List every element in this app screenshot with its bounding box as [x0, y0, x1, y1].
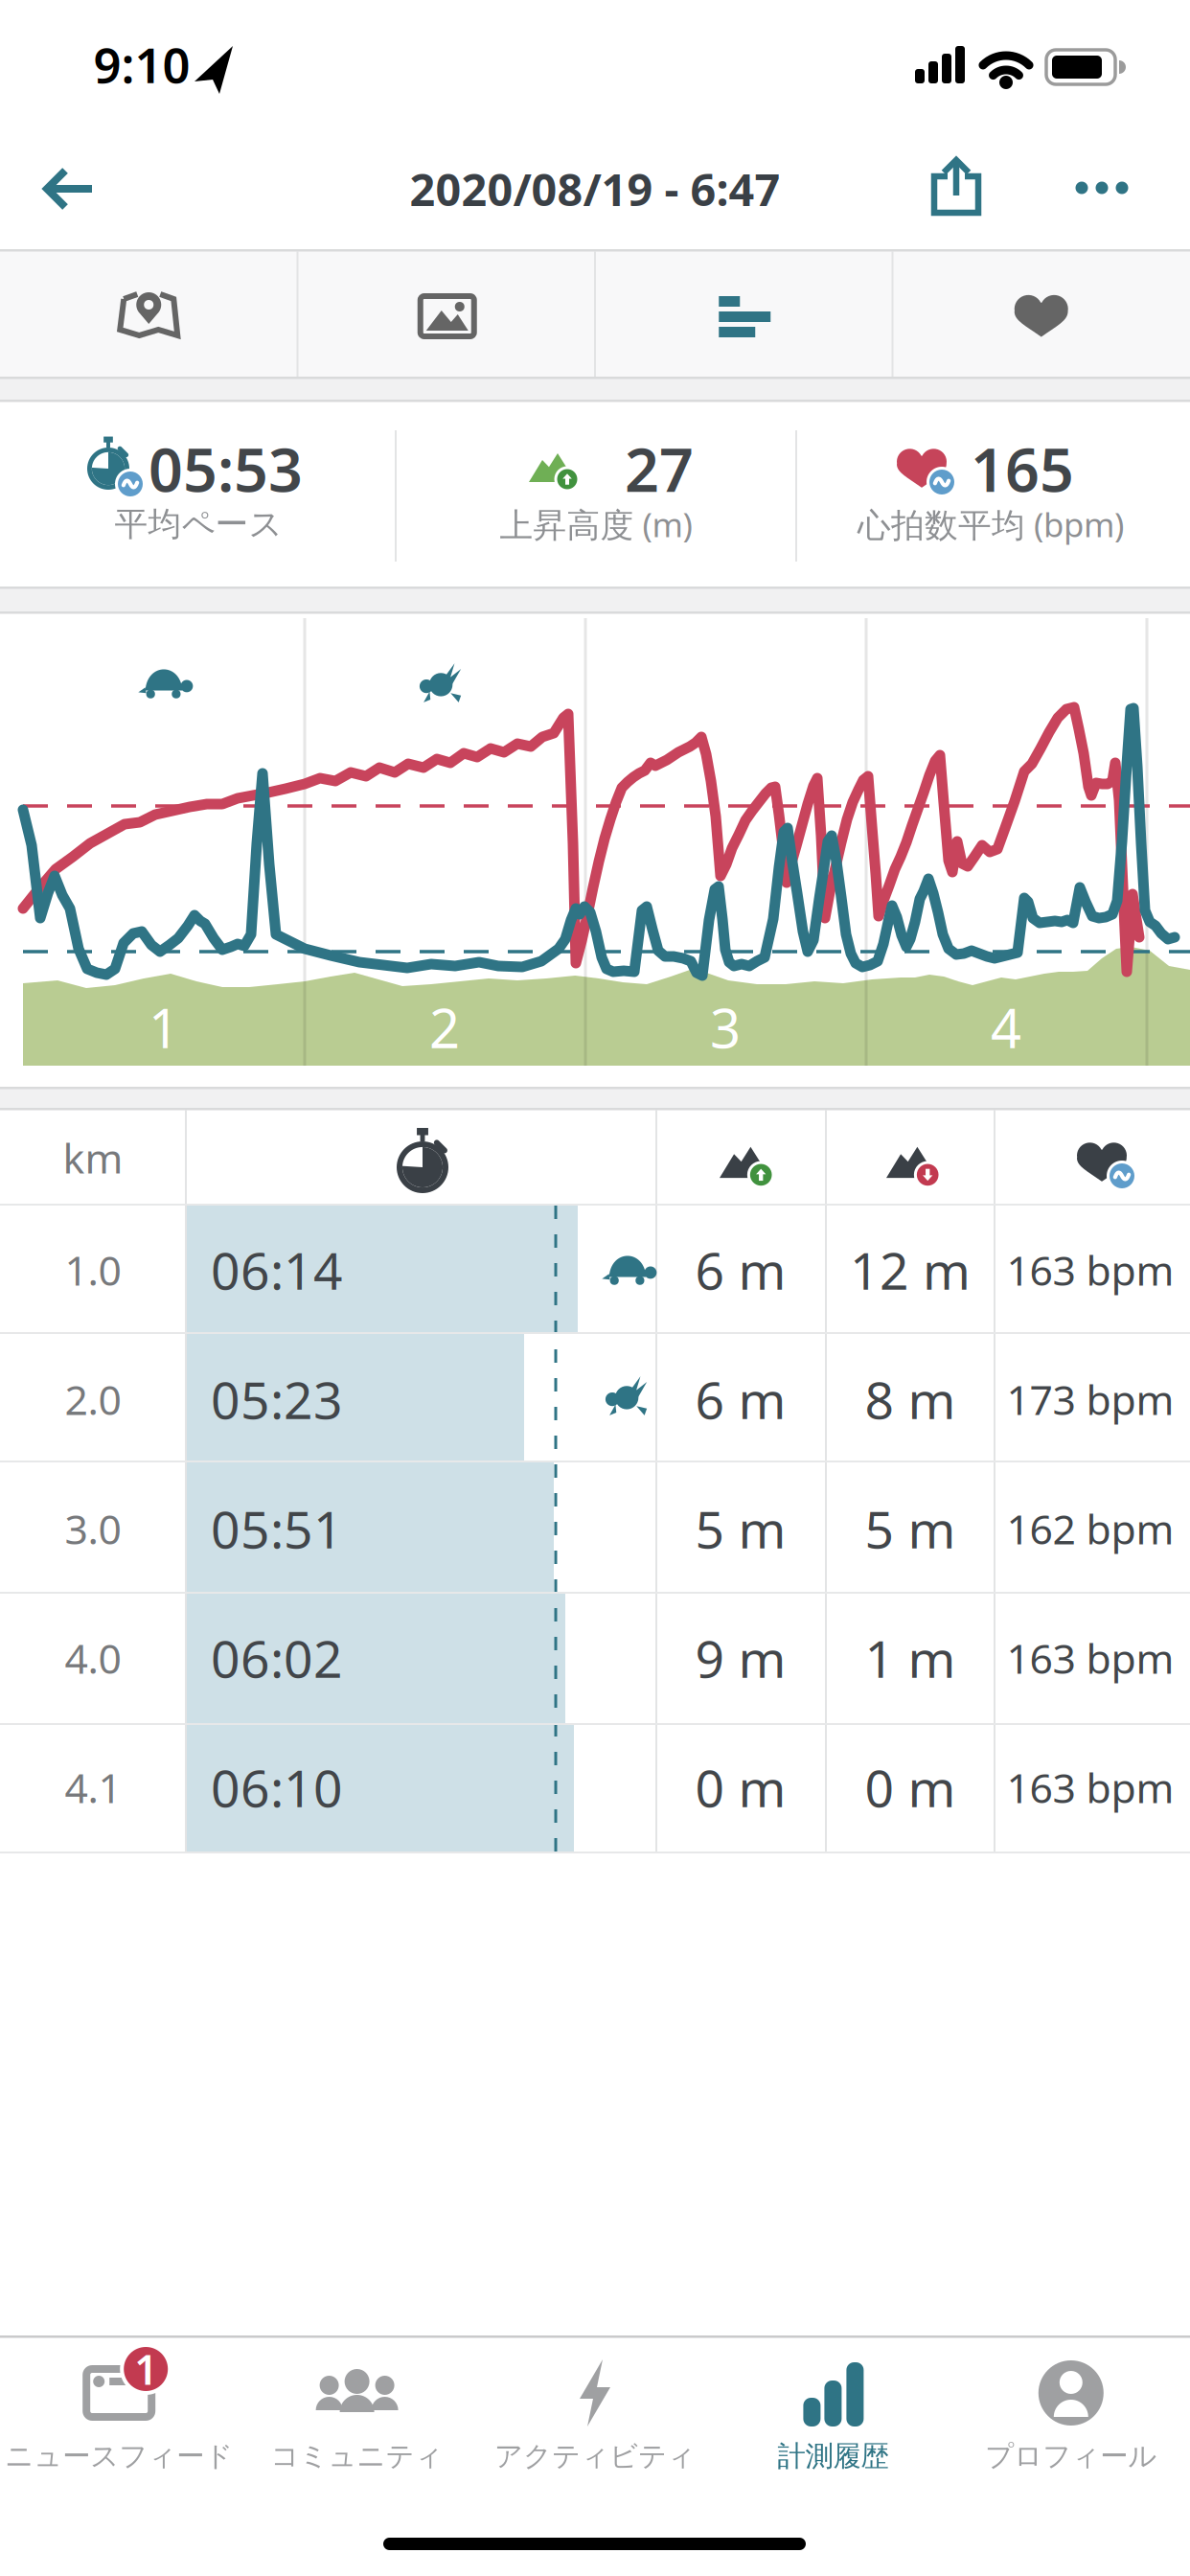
staticText: ニュースフィード	[5, 2439, 233, 2473]
button[interactable]: Splits	[595, 251, 892, 377]
button[interactable]: Heart rate	[893, 251, 1190, 377]
staticText: 2020/08/19 - 6:47	[410, 159, 780, 218]
staticText: 上昇高度 (m)	[500, 502, 692, 546]
staticText: 3.0	[65, 1501, 121, 1556]
staticText: 4.1	[65, 1760, 121, 1815]
staticText: 4.0	[65, 1631, 121, 1685]
staticText: 1.0	[65, 1243, 121, 1297]
staticText: 1	[134, 2342, 157, 2396]
staticText: 27	[625, 429, 694, 508]
button[interactable]: Profile	[952, 2338, 1190, 2511]
staticText: コミュニティ	[271, 2439, 443, 2473]
staticText: 163 bpm	[1007, 1760, 1174, 1815]
staticText: 165	[971, 429, 1074, 508]
button[interactable]: Photos	[298, 251, 595, 377]
staticText: プロフィール	[985, 2439, 1157, 2473]
button[interactable]: News feed	[0, 2338, 238, 2511]
staticText: 0 m	[695, 1753, 786, 1821]
staticText: 5 m	[695, 1495, 786, 1562]
button[interactable]: Map	[0, 251, 297, 377]
staticText: 6 m	[695, 1365, 786, 1433]
staticText: 4	[991, 992, 1021, 1063]
staticText: 05:51	[211, 1495, 343, 1562]
staticText: 162 bpm	[1007, 1501, 1174, 1556]
button[interactable]: Community	[238, 2338, 476, 2511]
staticText: 05:23	[211, 1365, 343, 1433]
staticText: 12 m	[850, 1236, 971, 1304]
staticText: 163 bpm	[1007, 1243, 1174, 1297]
button[interactable]: Activity	[476, 2338, 714, 2511]
staticText: 173 bpm	[1007, 1372, 1174, 1426]
button[interactable]: Back	[21, 157, 117, 220]
staticText: 6 m	[695, 1236, 786, 1304]
staticText: 平均ペース	[114, 504, 282, 545]
staticText: 5 m	[865, 1495, 956, 1562]
staticText: 9 m	[695, 1624, 786, 1692]
staticText: 2.0	[65, 1372, 121, 1426]
staticText: 1	[149, 992, 179, 1063]
staticText: 計測履歴	[777, 2439, 889, 2473]
staticText: 2	[429, 992, 460, 1063]
staticText: 1 m	[865, 1624, 956, 1692]
button[interactable]: More	[1069, 157, 1134, 218]
staticText: 06:02	[211, 1624, 343, 1692]
staticText: 06:10	[211, 1753, 343, 1821]
button[interactable]: History	[714, 2338, 952, 2511]
staticText: 06:14	[211, 1236, 343, 1304]
staticText: km	[63, 1131, 123, 1185]
button[interactable]: Share	[923, 157, 990, 218]
staticText: 05:53	[149, 429, 303, 508]
staticText: アクティビティ	[494, 2439, 696, 2473]
staticText: 心拍数平均 (bpm)	[858, 502, 1124, 546]
staticText: 0 m	[865, 1753, 956, 1821]
staticText: 3	[710, 992, 741, 1063]
staticText: 8 m	[865, 1365, 956, 1433]
staticText: 163 bpm	[1007, 1631, 1174, 1685]
staticText: 9:10	[93, 32, 190, 97]
